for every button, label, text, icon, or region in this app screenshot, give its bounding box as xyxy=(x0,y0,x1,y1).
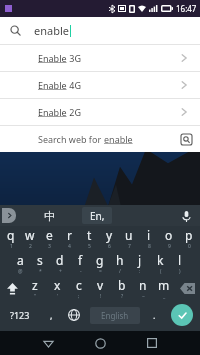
button[interactable]: q xyxy=(1,226,20,251)
staticText: ) xyxy=(179,268,181,275)
staticText: @ xyxy=(18,268,23,275)
staticText: z xyxy=(32,277,38,293)
button[interactable]: z xyxy=(24,276,46,301)
other: Search xyxy=(10,25,21,36)
button[interactable]: v xyxy=(90,276,111,301)
staticText: v xyxy=(97,277,104,293)
button[interactable]: p xyxy=(179,226,199,251)
staticText: 0 xyxy=(188,243,191,250)
staticText: 2 xyxy=(29,243,32,250)
button[interactable]: f xyxy=(70,251,90,276)
button[interactable]: e xyxy=(39,226,59,251)
staticText: p xyxy=(185,227,193,243)
button[interactable]: Expand toolbar xyxy=(2,208,16,223)
staticText: 2G xyxy=(67,106,82,118)
button[interactable]: d xyxy=(50,251,70,276)
staticText: 4G xyxy=(67,79,82,91)
button[interactable]: En, xyxy=(82,207,112,224)
staticText: ~ xyxy=(142,293,145,300)
staticText: / xyxy=(119,268,121,275)
staticText: + xyxy=(59,268,62,275)
staticText: s xyxy=(37,252,43,268)
button[interactable]: Backspace xyxy=(174,276,200,301)
button[interactable]: n xyxy=(132,276,153,301)
staticText: w xyxy=(25,227,35,243)
button[interactable]: Back xyxy=(22,331,74,355)
button[interactable]: English xyxy=(90,307,140,324)
button[interactable]: k xyxy=(150,251,170,276)
staticText: a xyxy=(17,252,24,268)
staticText: h xyxy=(116,252,124,268)
button[interactable]: w xyxy=(20,226,39,251)
button[interactable]: b xyxy=(111,276,132,301)
button[interactable]: Enable xyxy=(0,45,200,71)
button[interactable]: x xyxy=(46,276,68,301)
button[interactable]: j xyxy=(130,251,150,276)
button[interactable]: Change keyboard language xyxy=(62,301,86,329)
button[interactable]: i xyxy=(139,226,159,251)
staticText: 16:47 xyxy=(176,3,197,14)
button[interactable]: Home xyxy=(74,331,126,355)
staticText: 4 xyxy=(68,243,71,250)
staticText: l xyxy=(178,252,182,268)
button[interactable]: l xyxy=(170,251,190,276)
staticText: 8 xyxy=(148,243,151,250)
staticText: Enable xyxy=(38,106,67,118)
other: Search web xyxy=(181,134,192,145)
staticText: ; xyxy=(78,293,80,300)
button[interactable]: a xyxy=(10,251,30,276)
staticText: * xyxy=(39,268,42,275)
button[interactable]: Enter xyxy=(164,301,200,329)
staticText: k xyxy=(157,252,164,268)
staticText: ! xyxy=(100,293,102,300)
staticText: x xyxy=(54,277,61,293)
staticText: " xyxy=(34,293,37,300)
button[interactable]: Search xyxy=(0,17,200,44)
button[interactable]: m xyxy=(153,276,174,301)
button[interactable]: c xyxy=(68,276,90,301)
button[interactable]: Recent apps xyxy=(126,331,178,355)
staticText: 5 xyxy=(88,243,91,250)
staticText: 3G xyxy=(67,52,82,64)
staticText: ( xyxy=(160,268,162,275)
button[interactable]: Enable xyxy=(0,72,200,98)
button[interactable]: Search web for xyxy=(0,126,200,152)
button[interactable]: ?123 xyxy=(0,301,40,329)
staticText: ?123 xyxy=(10,309,30,321)
staticText: = xyxy=(99,268,102,275)
staticText: r xyxy=(67,227,72,243)
button[interactable]: 中 xyxy=(38,205,60,226)
staticText: , xyxy=(50,309,53,321)
staticText: _ xyxy=(163,293,166,300)
staticText: u xyxy=(125,227,133,243)
staticText: 9 xyxy=(168,243,171,250)
staticText: j xyxy=(138,252,142,268)
staticText: y xyxy=(106,227,113,243)
button[interactable]: u xyxy=(119,226,139,251)
staticText: i xyxy=(147,227,151,243)
button[interactable]: t xyxy=(79,226,99,251)
button[interactable]: . xyxy=(144,301,164,329)
staticText: Enable xyxy=(38,79,67,91)
staticText: - xyxy=(80,268,82,275)
staticText: Search web for xyxy=(38,133,104,145)
staticText: m xyxy=(158,277,170,293)
button[interactable]: h xyxy=(110,251,130,276)
button[interactable]: Voice input xyxy=(176,206,196,226)
staticText: ? xyxy=(121,293,124,300)
button[interactable]: y xyxy=(99,226,119,251)
button[interactable]: Enable xyxy=(0,99,200,125)
staticText: 3 xyxy=(48,243,51,250)
button[interactable]: , xyxy=(40,301,62,329)
staticText: ' xyxy=(57,293,59,300)
staticText: e xyxy=(46,227,53,243)
staticText: 中 xyxy=(44,209,55,223)
staticText: 6 xyxy=(108,243,111,250)
button[interactable]: g xyxy=(90,251,110,276)
button[interactable]: o xyxy=(159,226,179,251)
button[interactable]: Shift xyxy=(0,276,24,301)
button[interactable]: s xyxy=(30,251,50,276)
button[interactable]: r xyxy=(59,226,79,251)
staticText: Enable xyxy=(38,52,67,64)
staticText: b xyxy=(118,277,126,293)
